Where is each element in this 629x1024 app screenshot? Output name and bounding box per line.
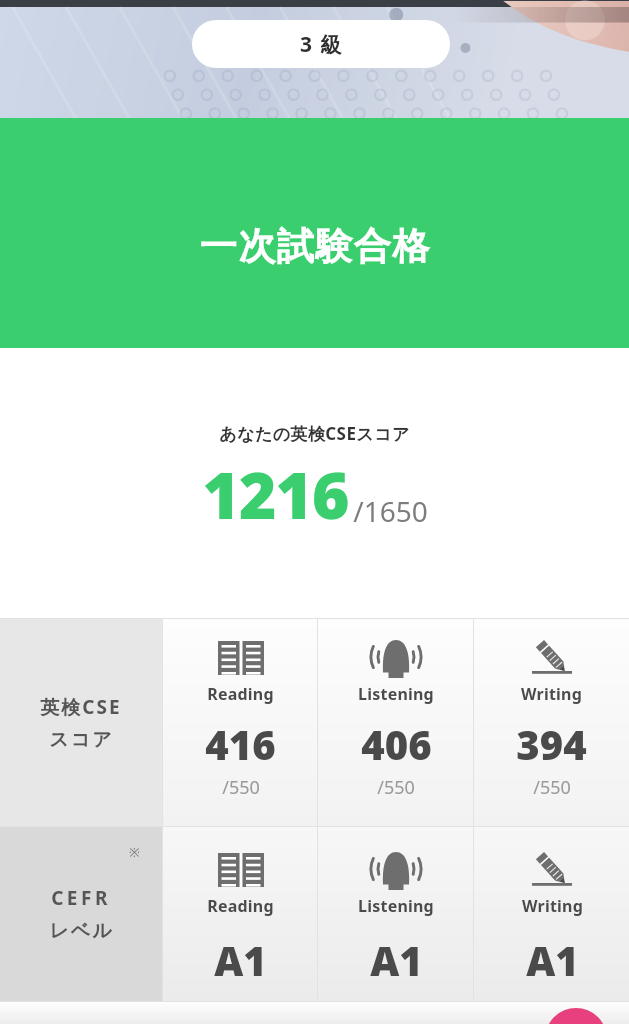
staticText: /550 <box>377 775 415 800</box>
staticText: /550 <box>533 775 571 800</box>
staticText: 3 級 <box>300 30 343 59</box>
staticText: Listening <box>358 683 434 705</box>
staticText: A1 <box>214 933 267 987</box>
button[interactable]: 英検CSE <box>0 619 162 826</box>
staticText: レベル <box>49 919 114 943</box>
button[interactable]: Writing <box>474 827 629 1001</box>
staticText: 406 <box>361 717 432 771</box>
staticText: Reading <box>207 683 274 705</box>
button[interactable]: Writing <box>474 619 629 826</box>
staticText: Writing <box>521 683 582 705</box>
staticText: /1650 <box>353 492 428 530</box>
staticText: 394 <box>516 717 587 771</box>
staticText: ※ <box>129 843 140 861</box>
staticText: Reading <box>207 895 274 917</box>
staticText: /550 <box>222 775 260 800</box>
staticText: あなたの英検CSEスコア <box>219 422 410 445</box>
staticText: Listening <box>358 895 434 917</box>
staticText: A1 <box>370 933 423 987</box>
button[interactable]: Reading <box>163 619 317 826</box>
staticText: Writing <box>522 895 583 917</box>
button[interactable]: Action <box>545 1008 607 1024</box>
staticText: 416 <box>205 717 276 771</box>
staticText: 1216 <box>202 451 349 538</box>
staticText: 英検CSE <box>40 694 122 720</box>
staticText: CEFR <box>51 885 111 911</box>
button[interactable]: Reading <box>163 827 317 1001</box>
button[interactable]: Listening <box>318 619 473 826</box>
staticText: スコア <box>49 728 114 752</box>
button[interactable]: 3 級 <box>192 20 450 68</box>
staticText: A1 <box>526 933 579 987</box>
staticText: 一次試験合格 <box>199 223 430 270</box>
button[interactable]: Listening <box>318 827 473 1001</box>
button[interactable]: ※ <box>0 827 162 1001</box>
